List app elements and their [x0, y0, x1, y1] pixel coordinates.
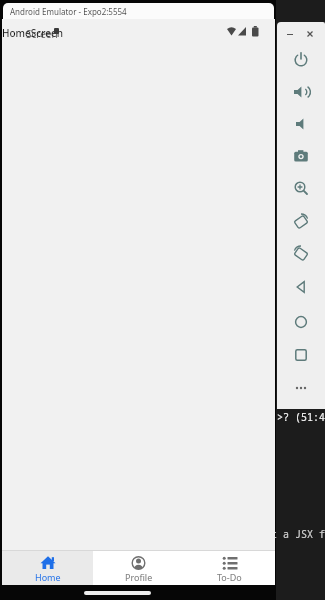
button[interactable]	[291, 345, 311, 365]
button[interactable]	[291, 82, 311, 102]
button[interactable]	[291, 211, 311, 231]
staticText: >? (51:4)	[277, 410, 325, 424]
staticText: t a JSX f	[271, 527, 325, 541]
staticText: HomeScreen	[2, 26, 63, 40]
button[interactable]	[291, 146, 311, 166]
button[interactable]	[291, 378, 311, 398]
staticText: Profile	[125, 571, 153, 583]
staticText: To-Do	[217, 571, 242, 583]
button[interactable]	[291, 114, 311, 134]
staticText: Screen	[26, 27, 58, 41]
button[interactable]: Profile	[93, 551, 184, 585]
button[interactable]	[291, 277, 311, 297]
button[interactable]: Home	[2, 551, 93, 585]
button[interactable]	[291, 50, 311, 70]
button[interactable]	[291, 178, 311, 198]
button[interactable]	[291, 312, 311, 332]
button[interactable]	[291, 243, 311, 263]
staticText: Android Emulator - Expo2:5554	[10, 6, 127, 17]
button[interactable]	[305, 29, 315, 39]
button[interactable]	[285, 29, 295, 39]
button[interactable]: To-Do	[184, 551, 275, 585]
staticText: Home	[35, 571, 61, 583]
